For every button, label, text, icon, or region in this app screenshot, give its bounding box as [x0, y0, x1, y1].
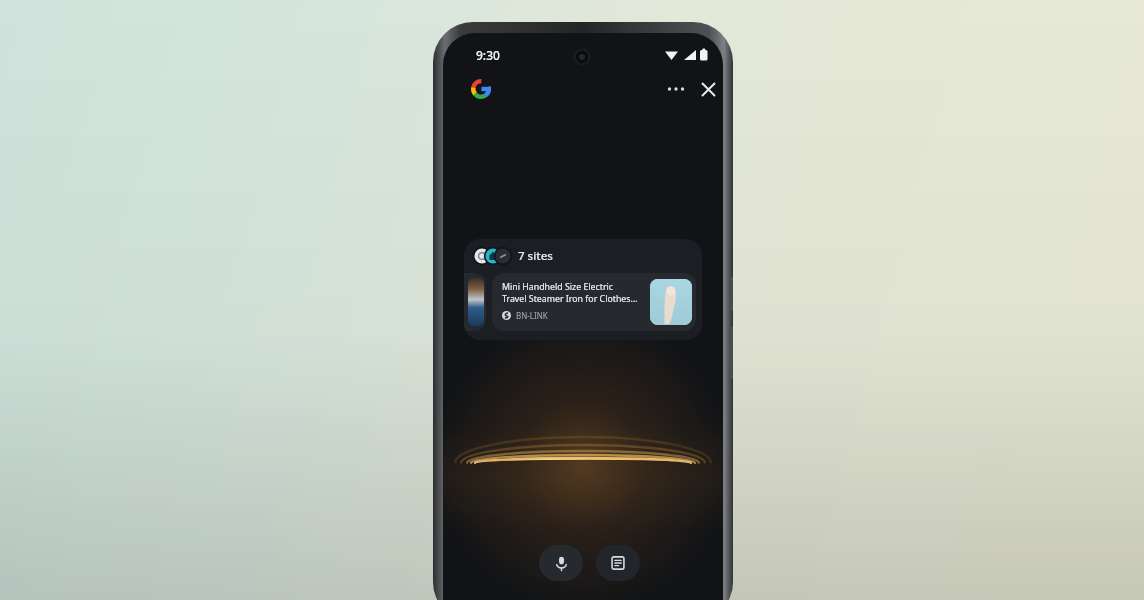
- button[interactable]: Close: [690, 71, 723, 107]
- button[interactable]: More options: [658, 71, 694, 107]
- staticText: 7 sites: [518, 248, 553, 264]
- button[interactable]: Voice input: [539, 545, 583, 581]
- staticText: Travel Steamer Iron for Clothes…: [502, 293, 638, 305]
- button[interactable]: Transcript: [596, 545, 640, 581]
- staticText: Mini Handheld Size Electric: [502, 281, 614, 293]
- button[interactable]: Google: [463, 71, 499, 107]
- staticText: BN-LINK: [516, 310, 548, 321]
- button[interactable]: 7 sites: [464, 239, 702, 340]
- button[interactable]: [464, 273, 486, 331]
- staticText: 9:30: [476, 47, 500, 63]
- button[interactable]: Mini Handheld Size Electric: [492, 273, 696, 331]
